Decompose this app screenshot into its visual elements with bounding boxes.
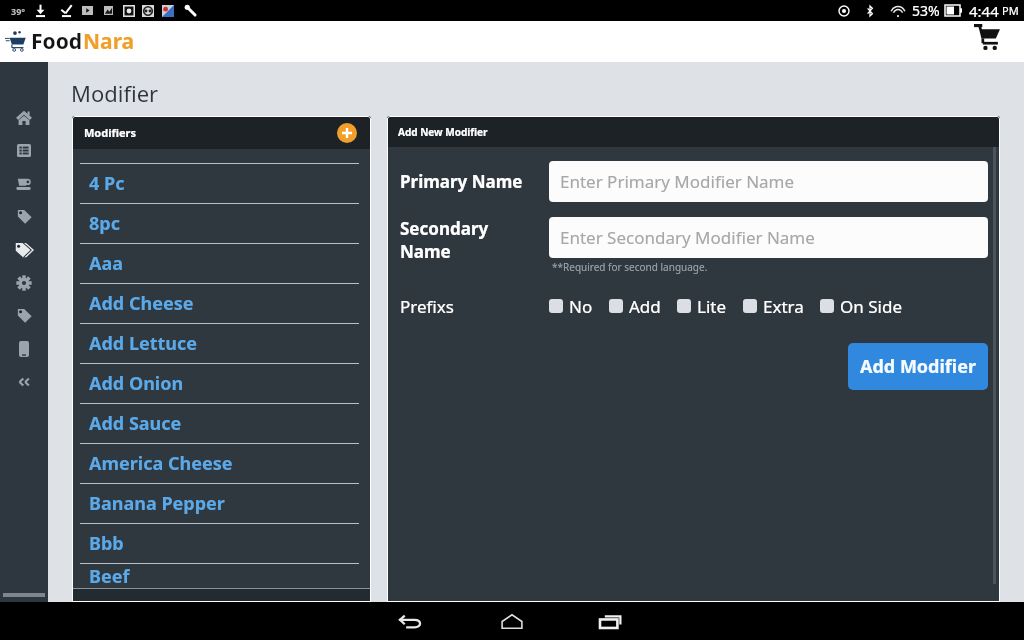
staticText: Lite	[697, 295, 727, 318]
button[interactable]: Menu item	[0, 332, 48, 365]
staticText: 53%	[912, 1, 940, 20]
button[interactable]: Banana Pepper	[80, 484, 359, 523]
button[interactable]: Menu item	[0, 233, 48, 266]
staticText: Prefixs	[400, 295, 454, 318]
button[interactable]: Beef	[80, 564, 359, 588]
button[interactable]: Add modifier	[337, 123, 357, 143]
staticText: Enter Primary Modifier Name	[560, 170, 795, 193]
button[interactable]: Menu item	[0, 200, 48, 233]
staticText: Name	[400, 240, 451, 263]
staticText: Add Lettuce	[89, 331, 198, 356]
button[interactable]: Add Cheese	[80, 284, 359, 323]
staticText: Add Sauce	[89, 411, 182, 436]
button[interactable]: Add Sauce	[80, 404, 359, 443]
button[interactable]: Recents	[582, 602, 642, 640]
button[interactable]: Bbb	[80, 524, 359, 563]
button[interactable]: Add	[609, 295, 661, 318]
staticText: Aaa	[89, 251, 124, 276]
staticText: America Cheese	[89, 451, 233, 476]
staticText: On Side	[840, 295, 902, 318]
button[interactable]: Add Lettuce	[80, 324, 359, 363]
button[interactable]: Menu item	[0, 167, 48, 200]
staticText: 4:44	[969, 1, 999, 21]
staticText: **Required for second language.	[552, 260, 708, 274]
staticText: Beef	[89, 564, 130, 588]
button[interactable]: America Cheese	[80, 444, 359, 483]
button[interactable]: Aaa	[80, 244, 359, 283]
staticText: Add	[629, 295, 661, 318]
button[interactable]: On Side	[820, 295, 902, 318]
button[interactable]: Cart	[972, 22, 1002, 52]
staticText: No	[569, 295, 593, 318]
button[interactable]: Extra	[743, 295, 804, 318]
button[interactable]: Menu item	[0, 365, 48, 398]
staticText: Modifiers	[84, 125, 137, 140]
staticText: PM	[1002, 3, 1019, 18]
button[interactable]: Enter Secondary Modifier Name	[549, 217, 988, 258]
staticText: Add New Modifier	[398, 125, 488, 139]
staticText: Add Modifier	[860, 354, 976, 379]
staticText: Food	[31, 27, 83, 56]
button[interactable]: Menu item	[0, 299, 48, 332]
staticText: 8pc	[89, 211, 120, 236]
staticText: Banana Pepper	[89, 491, 225, 516]
staticText: 4 Pc	[89, 171, 125, 196]
staticText: Add Cheese	[89, 291, 194, 316]
button[interactable]: Add Modifier	[848, 343, 988, 390]
staticText: Extra	[763, 295, 804, 318]
button[interactable]: Menu item	[0, 134, 48, 167]
button[interactable]: Back	[382, 602, 442, 640]
button[interactable]: Add Onion	[80, 364, 359, 403]
button[interactable]: No	[549, 295, 593, 318]
button[interactable]: Enter Primary Modifier Name	[549, 161, 988, 202]
staticText: Modifier	[71, 78, 159, 108]
button[interactable]: 4 Pc	[80, 164, 359, 203]
button[interactable]: Menu item	[0, 101, 48, 134]
staticText: Nara	[83, 27, 135, 56]
staticText: Add Onion	[89, 371, 184, 396]
button[interactable]: Menu item	[0, 266, 48, 299]
button[interactable]: Home	[482, 602, 542, 640]
button[interactable]: 8pc	[80, 204, 359, 243]
staticText: Primary Name	[400, 170, 523, 193]
staticText: Bbb	[89, 531, 124, 556]
button[interactable]: Lite	[677, 295, 727, 318]
staticText: Enter Secondary Modifier Name	[560, 226, 815, 249]
staticText: 39°	[11, 5, 26, 17]
staticText: Secondary	[400, 217, 489, 240]
